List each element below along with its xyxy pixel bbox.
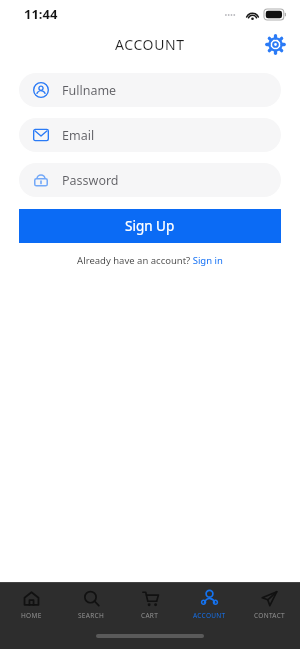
staticText: HOME bbox=[21, 611, 42, 620]
button[interactable]: Email bbox=[19, 118, 281, 152]
staticText: Sign Up bbox=[125, 217, 175, 235]
staticText: SEARCH bbox=[78, 611, 105, 620]
staticText: Fullname bbox=[62, 82, 117, 99]
staticText: ACCOUNT bbox=[193, 611, 226, 620]
button[interactable]: Fullname bbox=[19, 73, 281, 107]
staticText: Already have an account? Sign in bbox=[77, 254, 223, 267]
button[interactable]: CART bbox=[122, 590, 178, 620]
button[interactable]: CONTACT bbox=[241, 590, 297, 620]
button[interactable]: Sign Up bbox=[19, 209, 281, 243]
button[interactable]: HOME bbox=[3, 590, 59, 620]
staticText: CART bbox=[141, 611, 159, 620]
staticText: CONTACT bbox=[254, 611, 285, 620]
button[interactable]: Already have an account? Sign in bbox=[77, 254, 223, 267]
button[interactable]: Settings bbox=[258, 28, 292, 60]
staticText: Password bbox=[62, 172, 119, 189]
button[interactable]: ACCOUNT bbox=[181, 590, 237, 620]
staticText: 11:44 bbox=[24, 5, 58, 23]
staticText: Email bbox=[62, 127, 95, 144]
button[interactable]: Password bbox=[19, 163, 281, 197]
button[interactable]: SEARCH bbox=[63, 590, 119, 620]
staticText: ACCOUNT bbox=[115, 35, 185, 54]
